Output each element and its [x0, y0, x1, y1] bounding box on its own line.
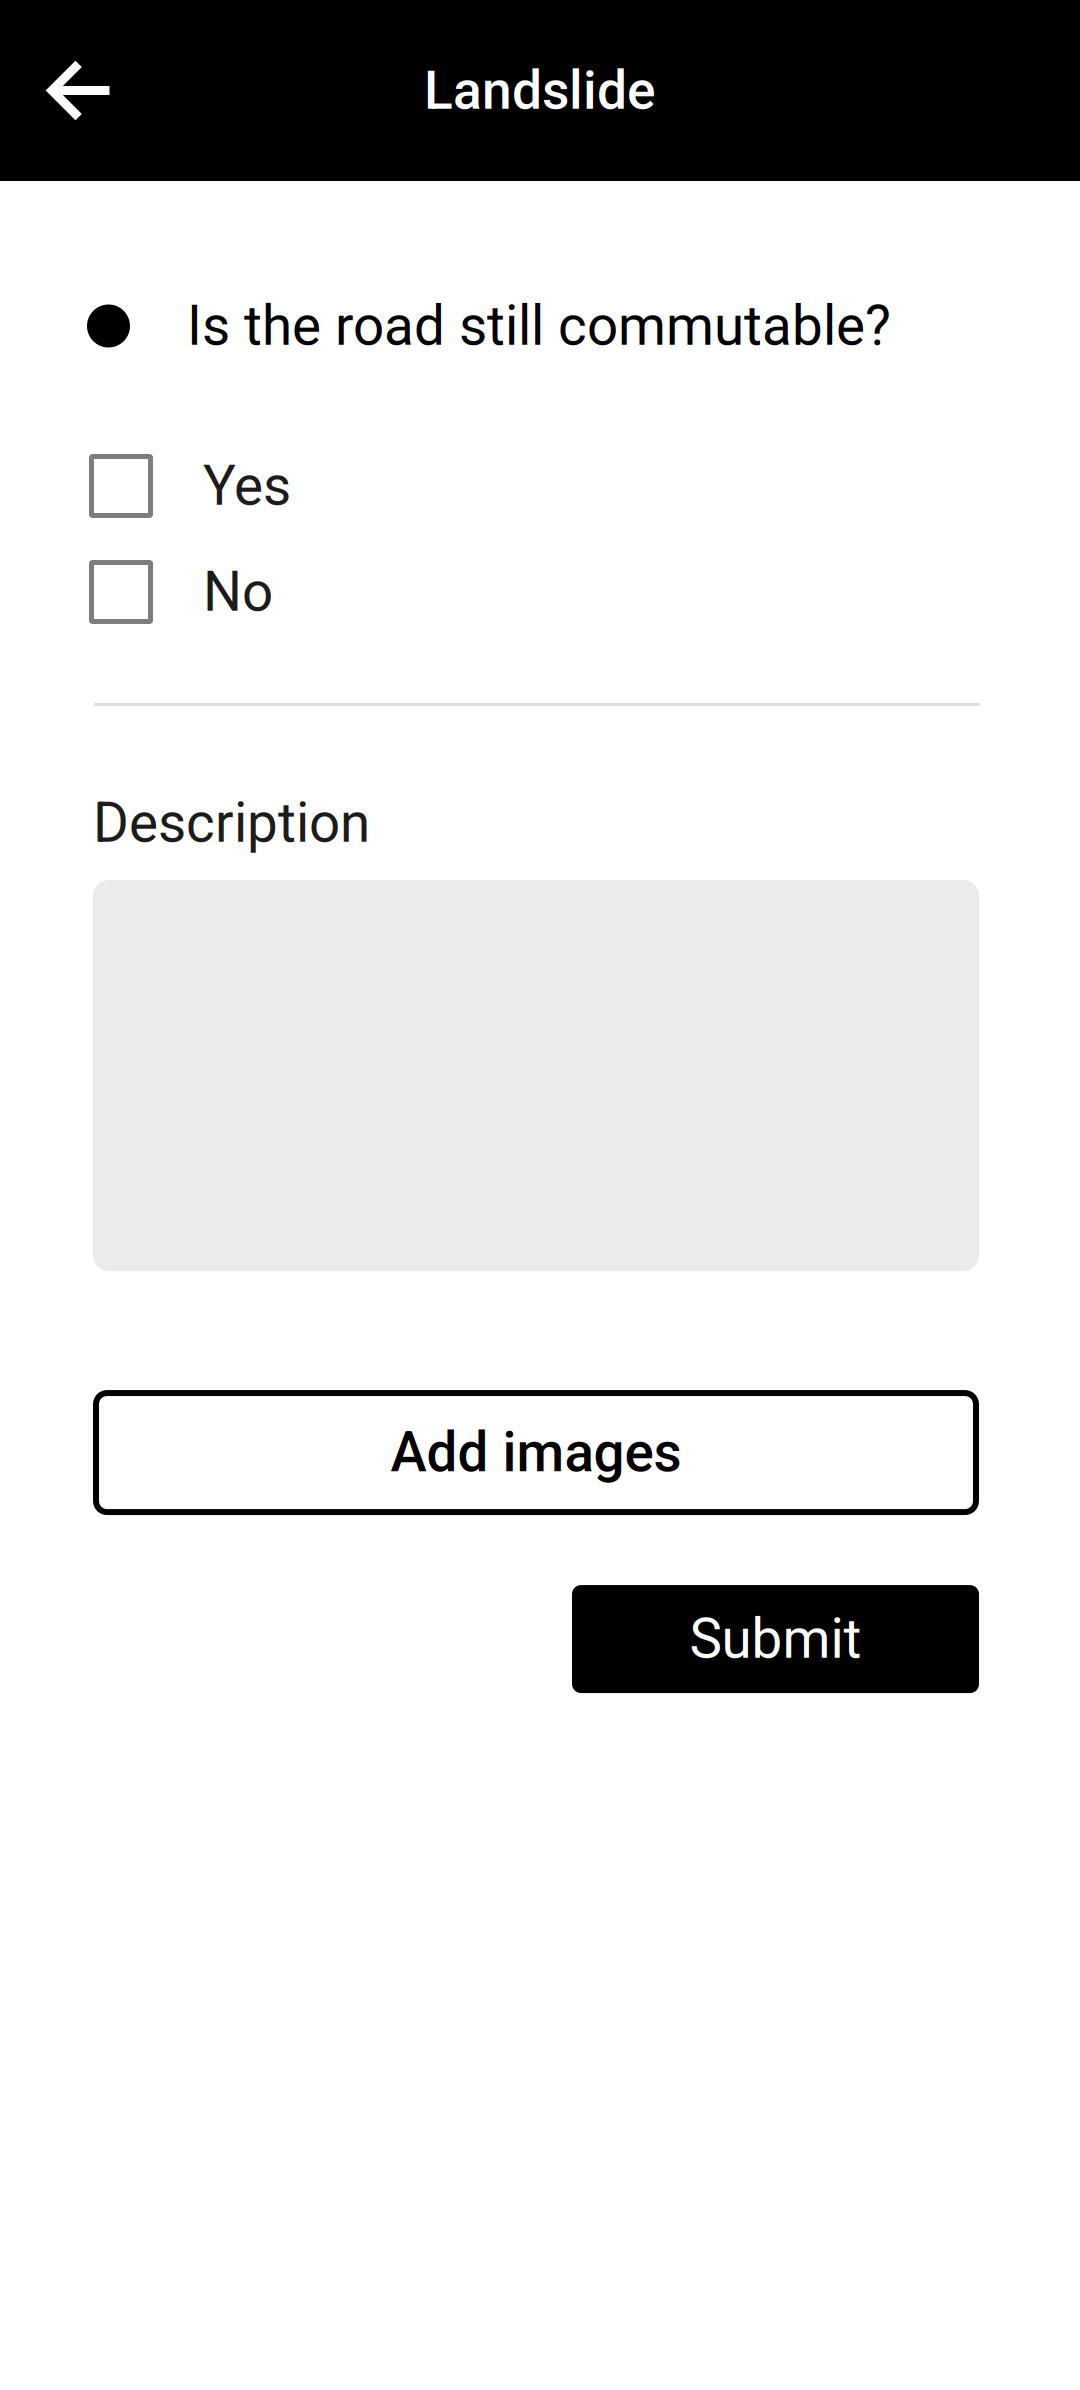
button[interactable]: Back — [0, 0, 178, 181]
button[interactable]: Add images — [93, 1390, 979, 1515]
staticText: Is the road still commutable? — [187, 294, 891, 358]
staticText: Landslide — [424, 59, 656, 122]
staticText: Yes — [203, 454, 291, 518]
staticText: Description — [93, 791, 370, 855]
staticText: Submit — [689, 1607, 861, 1671]
staticText: No — [203, 560, 273, 624]
button[interactable]: Submit — [572, 1585, 979, 1693]
button[interactable]: Yes — [89, 454, 975, 518]
staticText: Add images — [390, 1420, 681, 1485]
button[interactable]: No — [89, 560, 975, 624]
